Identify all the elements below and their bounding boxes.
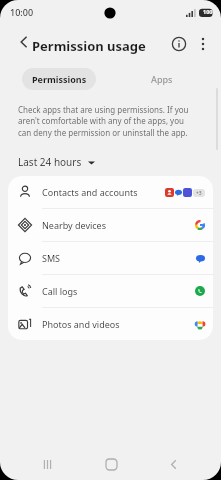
staticText: Apps xyxy=(151,73,173,85)
button[interactable]: SMS xyxy=(8,242,213,274)
staticText: +3 xyxy=(196,190,202,197)
staticText: 100 xyxy=(203,8,213,15)
button[interactable]: Last 24 hours xyxy=(16,152,97,172)
button[interactable]: Call logs xyxy=(8,275,213,307)
button[interactable]: Permissions xyxy=(22,68,96,90)
button[interactable]: Contacts and accounts xyxy=(8,176,213,208)
button[interactable]: Nearby devices xyxy=(8,209,213,241)
button[interactable]: Recent apps xyxy=(30,448,64,480)
button[interactable]: Photos and videos xyxy=(8,308,213,340)
staticText: Photos and videos xyxy=(42,318,120,330)
button[interactable]: More options xyxy=(192,33,214,55)
button[interactable]: Information xyxy=(168,33,190,55)
staticText: Last 24 hours xyxy=(18,155,82,169)
staticText: Permissions xyxy=(32,73,87,85)
staticText: 10:00 xyxy=(10,6,34,18)
button[interactable]: Apps xyxy=(110,68,213,90)
staticText: Check apps that are using permissions. I… xyxy=(18,104,198,139)
button[interactable]: Back xyxy=(12,30,36,54)
button[interactable]: Back xyxy=(157,448,191,480)
staticText: Contacts and accounts xyxy=(42,186,138,198)
staticText: SMS xyxy=(42,252,61,264)
button[interactable]: Home xyxy=(94,448,128,480)
staticText: Permission usage xyxy=(32,37,146,55)
staticText: Call logs xyxy=(42,285,78,297)
staticText: Nearby devices xyxy=(42,219,106,231)
